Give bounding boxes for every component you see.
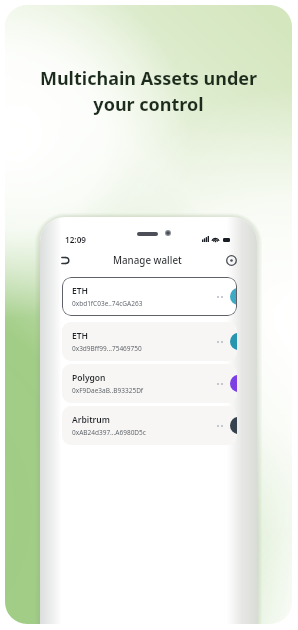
button[interactable]: Arbitrum <box>62 406 237 445</box>
staticText: ETH <box>72 285 89 297</box>
staticText: Polygon <box>72 372 106 384</box>
staticText: 0xF9Dae3aB..B93325Df <box>72 386 144 395</box>
button[interactable]: ETH <box>62 322 237 361</box>
staticText: Manage wallet <box>113 254 182 267</box>
button[interactable]: Back <box>58 253 72 267</box>
staticText: Multichain Assets under your control <box>5 66 292 116</box>
staticText: 0xbd1fC03e..74cGA263 <box>72 299 143 308</box>
staticText: 0xAB24d397...A6980D5c <box>72 428 146 437</box>
button[interactable]: Help <box>224 253 238 267</box>
staticText: 12:09 <box>65 234 86 245</box>
button[interactable]: Polygon <box>62 364 237 403</box>
staticText: ETH <box>72 330 89 342</box>
staticText: Arbitrum <box>72 414 110 426</box>
button[interactable]: ETH <box>62 277 237 316</box>
staticText: 0x3d9Bff99...75469750 <box>72 344 142 353</box>
